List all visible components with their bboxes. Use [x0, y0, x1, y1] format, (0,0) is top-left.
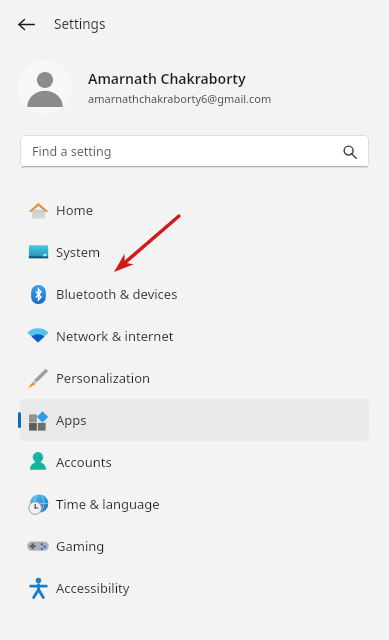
- button[interactable]: Gaming: [20, 525, 369, 567]
- button[interactable]: Personalization: [20, 357, 369, 399]
- button[interactable]: Network & internet: [20, 315, 369, 357]
- button[interactable]: Home: [20, 189, 369, 231]
- button[interactable]: Back: [9, 7, 43, 41]
- staticText: Personalization: [56, 369, 151, 387]
- button[interactable]: Amarnath Chakraborty: [18, 48, 389, 126]
- staticText: Accounts: [56, 453, 112, 471]
- button[interactable]: Apps: [20, 399, 369, 441]
- staticText: Find a setting: [32, 143, 343, 160]
- staticText: System: [56, 243, 101, 261]
- button[interactable]: Bluetooth & devices: [20, 273, 369, 315]
- button[interactable]: System: [20, 231, 369, 273]
- staticText: Network & internet: [56, 327, 174, 345]
- button[interactable]: Find a setting: [20, 135, 369, 168]
- button[interactable]: Accounts: [20, 441, 369, 483]
- staticText: Gaming: [56, 537, 105, 555]
- staticText: Apps: [56, 411, 87, 429]
- staticText: Accessibility: [56, 579, 130, 597]
- staticText: Amarnath Chakraborty: [88, 69, 246, 88]
- staticText: Home: [56, 201, 93, 219]
- staticText: Time & language: [56, 495, 160, 513]
- staticText: amarnathchakraborty6@gmail.com: [88, 91, 272, 106]
- button[interactable]: Time & language: [20, 483, 369, 525]
- button[interactable]: Accessibility: [20, 567, 369, 609]
- staticText: Bluetooth & devices: [56, 285, 178, 303]
- staticText: Settings: [54, 15, 106, 33]
